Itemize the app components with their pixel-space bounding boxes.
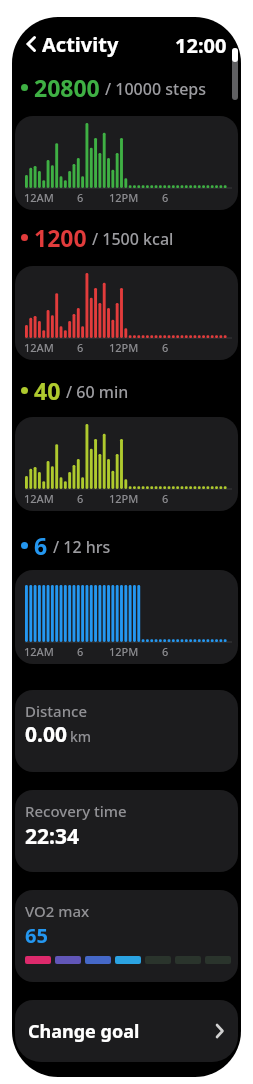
button[interactable]: Distance bbox=[15, 690, 238, 772]
staticText: 12PM bbox=[109, 644, 139, 659]
button[interactable]: Recovery time bbox=[15, 790, 238, 872]
staticText: / 10000 steps bbox=[105, 78, 207, 100]
staticText: 6 bbox=[77, 644, 84, 659]
staticText: 6 bbox=[162, 644, 169, 659]
staticText: 6 bbox=[34, 530, 48, 560]
staticText: 20800 bbox=[34, 72, 100, 102]
staticText: 12AM bbox=[24, 644, 54, 659]
staticText: Change goal bbox=[28, 1019, 140, 1044]
button[interactable]: Change goal bbox=[15, 1000, 238, 1062]
button[interactable]: VO2 max bbox=[15, 890, 238, 982]
staticText: 40 bbox=[34, 375, 61, 405]
staticText: 6 bbox=[77, 340, 84, 355]
staticText: km bbox=[70, 727, 92, 746]
button[interactable]: 12AM bbox=[15, 266, 238, 360]
staticText: 12PM bbox=[109, 340, 139, 355]
staticText: 6 bbox=[162, 190, 169, 205]
staticText: 65 bbox=[25, 922, 48, 949]
staticText: 12PM bbox=[109, 491, 139, 506]
staticText: 6 bbox=[77, 190, 84, 205]
staticText: 12:00 bbox=[175, 32, 227, 59]
staticText: 0.00 bbox=[25, 720, 67, 749]
staticText: 1200 bbox=[34, 222, 87, 252]
button[interactable]: 12AM bbox=[15, 570, 238, 664]
staticText: 12AM bbox=[24, 340, 54, 355]
staticText: Recovery time bbox=[25, 801, 127, 821]
staticText: / 1500 kcal bbox=[92, 228, 174, 250]
button[interactable]: Activity bbox=[25, 31, 119, 57]
staticText: / 60 min bbox=[66, 381, 129, 403]
staticText: 6 bbox=[162, 491, 169, 506]
staticText: / 12 hrs bbox=[53, 536, 111, 558]
staticText: Activity bbox=[42, 31, 119, 57]
staticText: 12PM bbox=[109, 190, 139, 205]
staticText: VO2 max bbox=[25, 901, 90, 921]
staticText: 12AM bbox=[24, 190, 54, 205]
button[interactable]: 12AM bbox=[15, 116, 238, 210]
staticText: 12AM bbox=[24, 491, 54, 506]
staticText: 6 bbox=[77, 491, 84, 506]
staticText: Distance bbox=[25, 701, 88, 721]
staticText: 22:34 bbox=[25, 822, 79, 851]
staticText: 6 bbox=[162, 340, 169, 355]
button[interactable]: 12AM bbox=[15, 417, 238, 511]
